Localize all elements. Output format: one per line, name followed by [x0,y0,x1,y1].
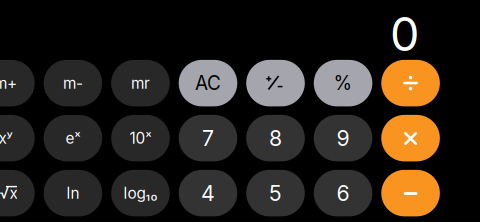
staticText: m+ [0,74,17,92]
button[interactable]: 10ˣ [111,115,170,161]
button[interactable]: 6 [314,170,372,216]
button[interactable]: m+ [0,60,35,106]
staticText: mr [131,74,150,92]
staticText: 6 [337,180,350,206]
button[interactable]: AC [179,60,237,106]
staticText: % [334,72,353,94]
button[interactable]: 7 [179,115,237,161]
button[interactable]: m- [44,60,102,106]
staticText: ln [66,184,79,202]
staticText: 4 [201,180,215,206]
staticText: 5 [269,180,282,206]
button[interactable]: ln [44,170,102,216]
staticText: eˣ [65,129,80,147]
staticText: m- [63,74,83,92]
staticText: 9 [337,125,350,151]
button[interactable]: Divide [381,60,440,106]
button[interactable]: log₁₀ [111,170,170,216]
staticText: AC [195,72,221,94]
button[interactable]: 4 [179,170,237,216]
staticText: ʸ√x [0,184,17,202]
button[interactable]: mr [111,60,170,106]
staticText: log₁₀ [123,184,157,202]
staticText: xʸ [0,129,12,147]
button[interactable]: Plus minus [246,60,305,106]
button[interactable]: xʸ [0,115,35,161]
button[interactable]: 8 [246,115,305,161]
button[interactable]: Minus [381,170,440,216]
staticText: 7 [202,125,214,151]
staticText: 0 [390,6,419,62]
button[interactable]: % [314,60,372,106]
button[interactable]: 5 [246,170,305,216]
staticText: 10ˣ [129,129,151,147]
button[interactable]: Multiply [381,115,440,161]
button[interactable]: ʸ√x [0,170,35,216]
button[interactable]: 9 [314,115,372,161]
staticText: 8 [269,125,282,151]
button[interactable]: eˣ [44,115,102,161]
